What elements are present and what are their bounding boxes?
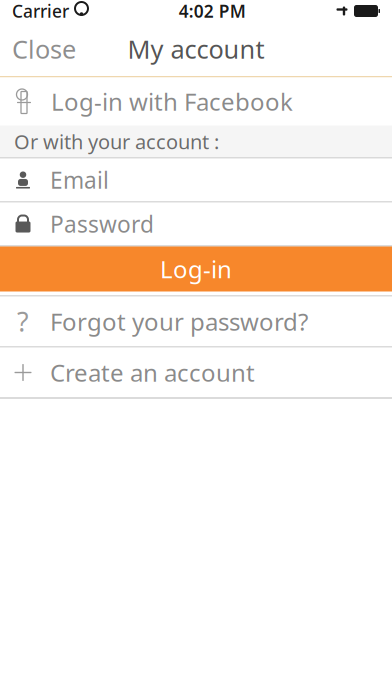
staticText: Forgot your password? xyxy=(50,306,308,337)
staticText: 4:02 PM xyxy=(179,0,246,22)
button[interactable]: Log-in with Facebook xyxy=(0,77,392,125)
staticText: Create an account xyxy=(50,357,255,388)
staticText: Password xyxy=(50,209,154,239)
staticText: Log-in with Facebook xyxy=(51,86,293,117)
staticText: Close xyxy=(12,32,76,66)
button[interactable]: Email xyxy=(0,158,392,201)
button[interactable]: Close xyxy=(0,22,88,76)
button[interactable]: Password xyxy=(0,202,392,245)
staticText: Carrier xyxy=(12,0,69,22)
button[interactable]: Log-in xyxy=(0,246,392,291)
staticText: ? xyxy=(17,304,29,339)
button[interactable]: ? xyxy=(0,296,392,346)
staticText: Or with your account : xyxy=(14,128,219,155)
staticText: Email xyxy=(50,165,109,195)
staticText: My account xyxy=(127,32,264,66)
button[interactable]: Create an account xyxy=(0,347,392,397)
staticText: Log-in xyxy=(160,253,232,285)
